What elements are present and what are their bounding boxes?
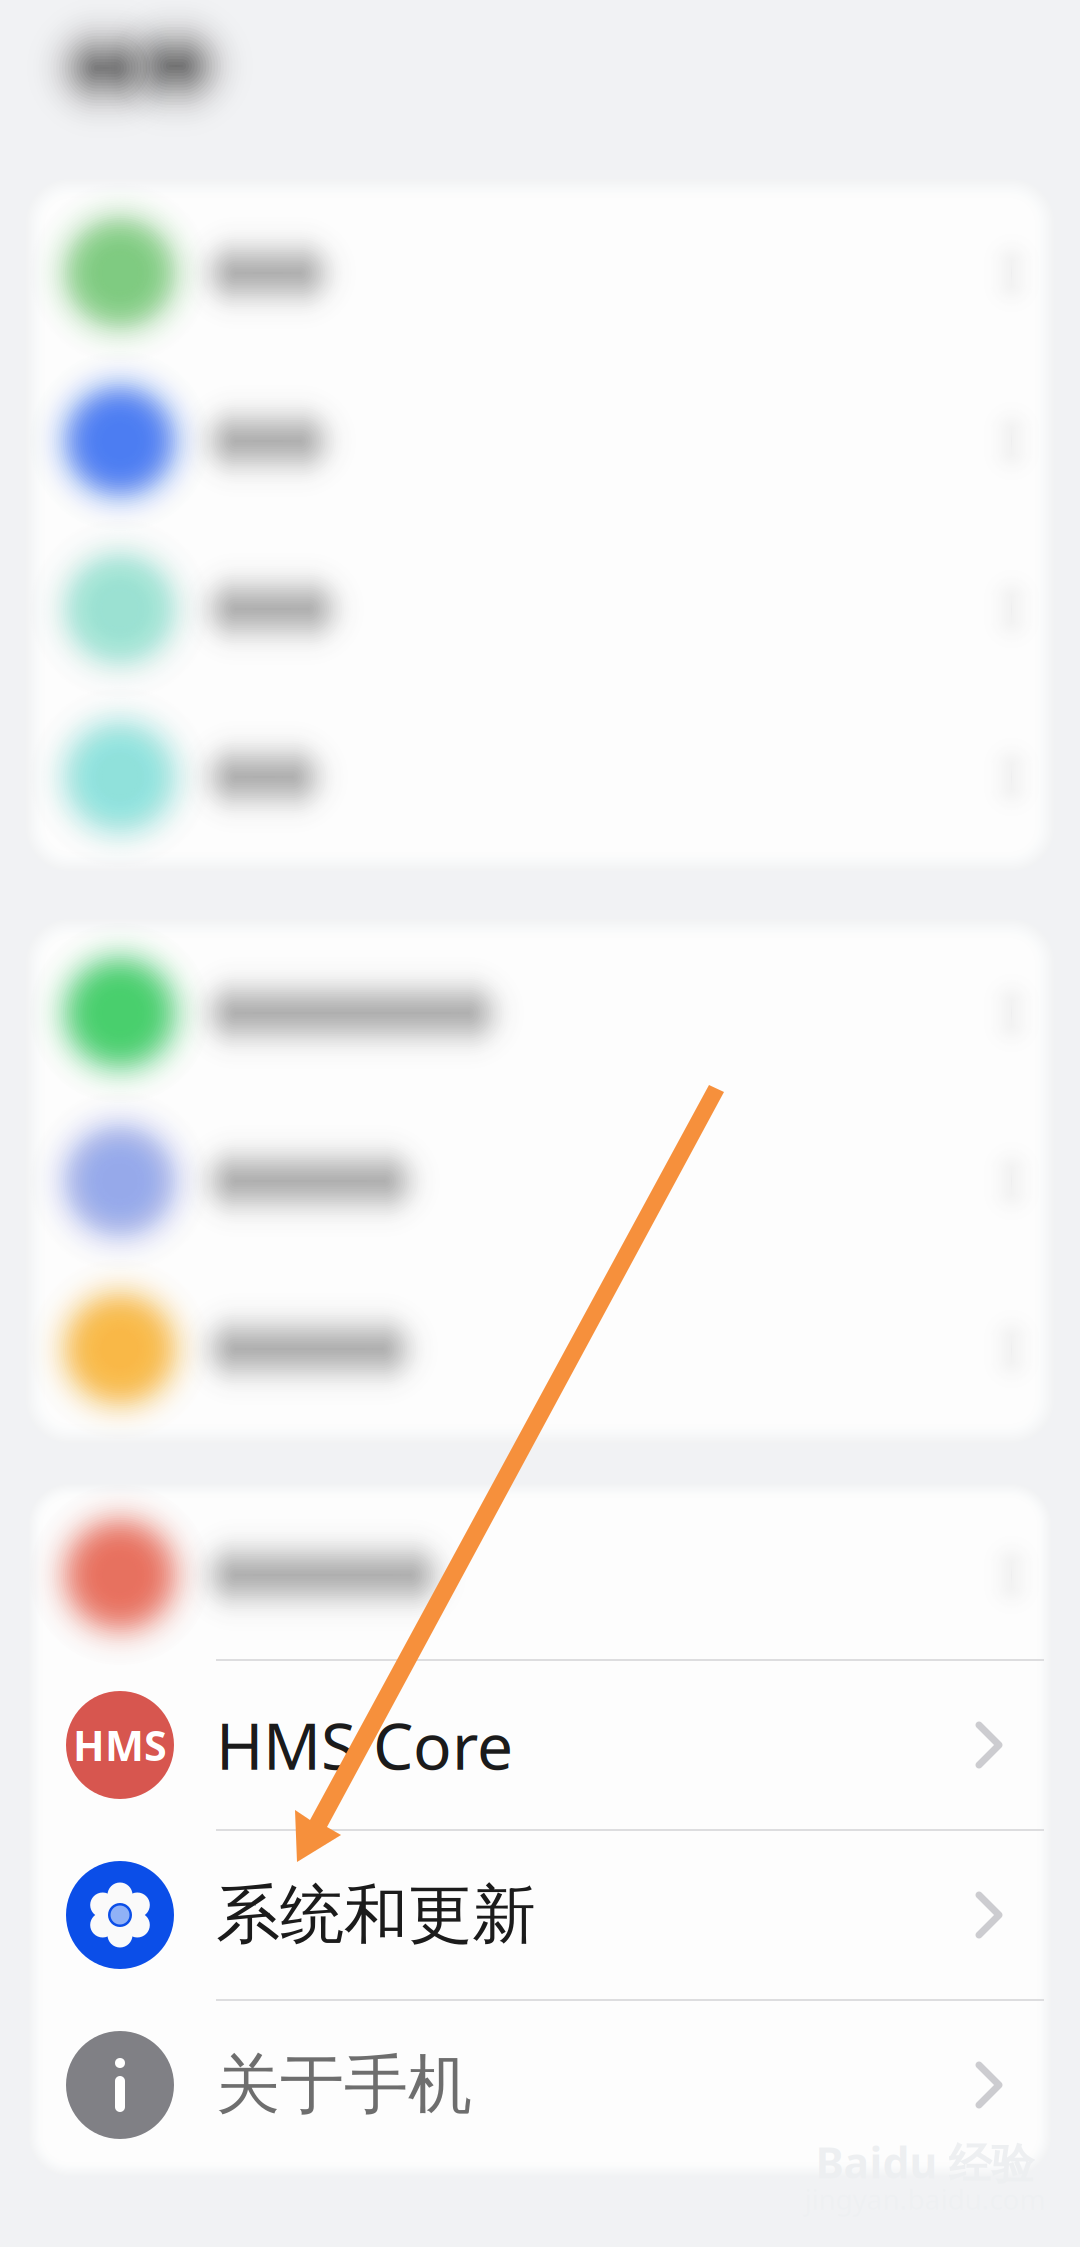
button[interactable]: 关于手机 — [36, 2001, 1044, 2169]
staticText: 系统和更新 — [216, 1876, 536, 1954]
button[interactable]: HMS — [36, 1661, 1044, 1829]
staticText: 关于手机 — [216, 2046, 472, 2124]
staticText: HMS — [73, 1718, 167, 1772]
button[interactable]: 系统和更新 — [36, 1831, 1044, 1999]
staticText: Baidu 经验 — [815, 2134, 1034, 2190]
staticText: HMS Core — [216, 1702, 513, 1787]
